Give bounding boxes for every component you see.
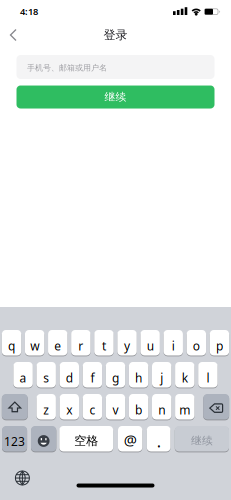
- button[interactable]: o: [187, 329, 206, 356]
- staticText: f: [90, 370, 94, 386]
- staticText: 123: [4, 433, 25, 449]
- button[interactable]: Delete: [203, 393, 229, 420]
- button[interactable]: .: [147, 425, 170, 452]
- staticText: u: [147, 338, 154, 354]
- button[interactable]: d: [60, 361, 79, 388]
- staticText: y: [124, 338, 130, 354]
- staticText: s: [43, 370, 49, 386]
- staticText: t: [102, 338, 106, 354]
- staticText: 手机号、邮箱或用户名: [27, 63, 107, 73]
- button[interactable]: y: [117, 329, 137, 356]
- button[interactable]: t: [94, 329, 114, 356]
- staticText: o: [193, 338, 200, 354]
- staticText: a: [20, 370, 27, 386]
- staticText: d: [66, 370, 73, 386]
- staticText: 4:18: [20, 5, 38, 18]
- staticText: g: [112, 370, 119, 386]
- staticText: k: [182, 370, 188, 386]
- staticText: l: [206, 370, 209, 386]
- button[interactable]: 继续: [175, 425, 229, 452]
- button[interactable]: r: [71, 329, 91, 356]
- staticText: .: [157, 431, 161, 452]
- button[interactable]: 123: [2, 425, 27, 452]
- staticText: m: [179, 402, 190, 418]
- button[interactable]: i: [164, 329, 183, 356]
- button[interactable]: @: [118, 425, 142, 452]
- button[interactable]: Emoji: [31, 425, 56, 452]
- button[interactable]: m: [175, 393, 194, 420]
- staticText: n: [158, 402, 165, 418]
- staticText: v: [112, 402, 118, 418]
- button[interactable]: f: [83, 361, 102, 388]
- staticText: 空格: [74, 433, 98, 448]
- staticText: 继续: [191, 434, 213, 447]
- staticText: z: [43, 402, 49, 418]
- staticText: 继续: [104, 90, 126, 103]
- button[interactable]: z: [36, 393, 56, 420]
- staticText: 登录: [103, 28, 127, 42]
- button[interactable]: 继续: [16, 85, 214, 108]
- staticText: q: [8, 338, 15, 354]
- staticText: w: [30, 338, 39, 354]
- staticText: b: [135, 402, 142, 418]
- button[interactable]: Back: [4, 27, 23, 43]
- button[interactable]: u: [140, 329, 160, 356]
- button[interactable]: l: [198, 361, 218, 388]
- button[interactable]: h: [129, 361, 148, 388]
- staticText: @: [124, 430, 137, 449]
- button[interactable]: p: [210, 329, 229, 356]
- button[interactable]: x: [60, 393, 79, 420]
- button[interactable]: Next keyboard: [14, 470, 30, 486]
- button[interactable]: a: [13, 361, 33, 388]
- button[interactable]: s: [36, 361, 56, 388]
- button[interactable]: 手机号、邮箱或用户名: [16, 55, 214, 79]
- staticText: i: [172, 338, 175, 354]
- button[interactable]: n: [152, 393, 171, 420]
- staticText: x: [66, 402, 72, 418]
- button[interactable]: Shift: [2, 393, 28, 420]
- staticText: h: [135, 370, 142, 386]
- button[interactable]: w: [25, 329, 44, 356]
- button[interactable]: q: [2, 329, 21, 356]
- button[interactable]: e: [48, 329, 67, 356]
- button[interactable]: c: [83, 393, 102, 420]
- button[interactable]: b: [129, 393, 148, 420]
- button[interactable]: j: [152, 361, 171, 388]
- staticText: j: [160, 370, 163, 386]
- button[interactable]: k: [175, 361, 194, 388]
- staticText: p: [216, 338, 223, 354]
- button[interactable]: g: [106, 361, 125, 388]
- staticText: e: [54, 338, 61, 354]
- button[interactable]: 空格: [59, 425, 113, 452]
- staticText: r: [78, 338, 83, 354]
- staticText: c: [89, 402, 95, 418]
- button[interactable]: v: [106, 393, 125, 420]
